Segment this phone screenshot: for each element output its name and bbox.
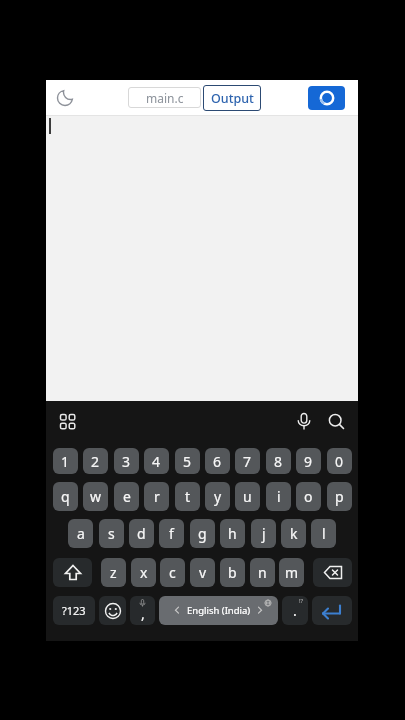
button[interactable]: . [282,596,308,625]
button[interactable] [327,412,347,432]
button[interactable]: f [159,519,184,548]
staticText: o [304,487,313,506]
button[interactable]: 1 [53,448,78,474]
button[interactable]: 9 [296,448,321,474]
staticText: !? [299,597,304,605]
staticText: s [108,524,115,543]
staticText: 5 [183,452,192,471]
staticText: l [322,524,326,543]
staticText: b [228,563,237,582]
staticText: d [137,524,146,543]
button[interactable]: q [53,482,78,511]
button[interactable] [54,87,76,109]
staticText: n [258,563,267,582]
button[interactable]: k [281,519,306,548]
staticText: 2 [91,452,100,471]
button[interactable]: 7 [235,448,260,474]
button[interactable]: e [114,482,139,511]
staticText: c [169,563,176,582]
staticText: p [335,487,344,506]
staticText: v [199,563,207,582]
staticText: e [123,487,131,506]
staticText: 0 [335,452,344,471]
button[interactable] [312,596,352,625]
staticText: a [77,524,85,543]
staticText: r [154,487,160,506]
staticText: i [277,487,281,506]
staticText: 9 [304,452,313,471]
button[interactable]: 6 [205,448,230,474]
button[interactable]: u [235,482,260,511]
button[interactable]: y [205,482,230,511]
button[interactable] [294,412,314,432]
button[interactable]: t [175,482,200,511]
button[interactable]: a [68,519,93,548]
staticText: y [214,487,222,506]
staticText: , [141,604,145,623]
staticText: 3 [122,452,131,471]
staticText: Output [211,90,254,107]
staticText: m [285,563,299,582]
staticText: u [243,487,252,506]
staticText: ?123 [62,603,86,618]
staticText: 4 [152,452,161,471]
button[interactable]: 8 [266,448,291,474]
staticText: g [198,524,207,543]
button[interactable]: English (India) [159,596,278,625]
staticText: f [169,524,174,543]
button[interactable]: l [311,519,336,548]
button[interactable]: h [220,519,245,548]
button[interactable]: d [129,519,154,548]
button[interactable]: z [101,558,126,587]
staticText: j [262,524,266,543]
staticText: . [293,601,297,620]
button[interactable]: s [99,519,124,548]
button[interactable] [59,413,77,431]
button[interactable]: i [266,482,291,511]
staticText: 8 [274,452,283,471]
staticText: 7 [243,452,252,471]
staticText: z [110,563,117,582]
staticText: k [290,524,298,543]
button[interactable]: x [131,558,156,587]
button[interactable]: p [327,482,352,511]
button[interactable]: 4 [144,448,169,474]
staticText: q [61,487,70,506]
button[interactable]: 0 [327,448,352,474]
button[interactable]: 3 [114,448,139,474]
button[interactable]: r [144,482,169,511]
button[interactable]: 5 [175,448,200,474]
staticText: English (India) [187,604,251,617]
staticText: w [90,487,102,506]
button[interactable]: w [83,482,108,511]
button[interactable]: b [220,558,245,587]
staticText: main.c [146,90,184,106]
button[interactable]: main.c [128,87,201,108]
button[interactable]: , [130,596,155,625]
button[interactable]: m [279,558,304,587]
button[interactable] [308,86,345,110]
button[interactable] [313,558,352,587]
button[interactable]: v [190,558,215,587]
staticText: 6 [213,452,222,471]
button[interactable]: n [250,558,275,587]
button[interactable]: g [190,519,215,548]
button[interactable]: 2 [83,448,108,474]
button[interactable]: c [160,558,185,587]
button[interactable]: Output [203,85,261,111]
button[interactable]: j [251,519,276,548]
button[interactable]: o [296,482,321,511]
button[interactable] [53,558,92,587]
staticText: 1 [61,452,70,471]
button[interactable] [99,596,126,625]
staticText: h [228,524,237,543]
staticText: t [185,487,191,506]
staticText: x [140,563,148,582]
button[interactable]: ?123 [53,596,95,625]
